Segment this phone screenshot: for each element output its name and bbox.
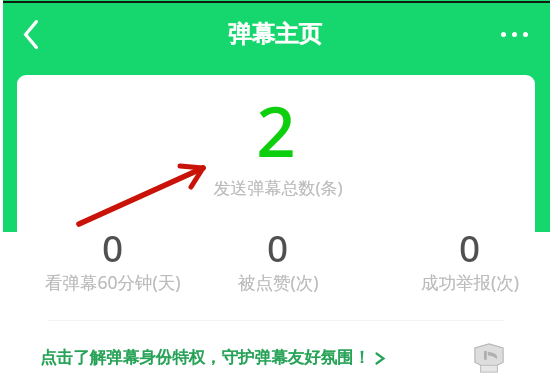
staticText: 2 — [17, 83, 535, 177]
staticText: 点击了解弹幕身份特权，守护弹幕友好氛围！ — [40, 347, 370, 368]
button[interactable]: Badge — [474, 343, 504, 374]
staticText: 0 — [267, 222, 289, 272]
staticText: 0 — [459, 222, 481, 272]
staticText: 0 — [102, 222, 124, 272]
button[interactable]: 点击了解弹幕身份特权，守护弹幕友好氛围！ — [17, 335, 535, 381]
staticText: 发送弹幕总数(条) — [19, 176, 535, 199]
staticText: 看弹幕60分钟(天) — [45, 270, 181, 294]
button[interactable]: 0 — [188, 222, 368, 296]
button[interactable]: More options — [490, 10, 538, 58]
staticText: 被点赞(次) — [238, 270, 319, 294]
button[interactable]: 0 — [23, 222, 203, 296]
staticText: 弹幕主页 — [228, 19, 322, 49]
staticText: 成功举报(次) — [421, 270, 519, 294]
button[interactable]: 0 — [380, 222, 535, 296]
button[interactable]: Back — [7, 10, 55, 58]
